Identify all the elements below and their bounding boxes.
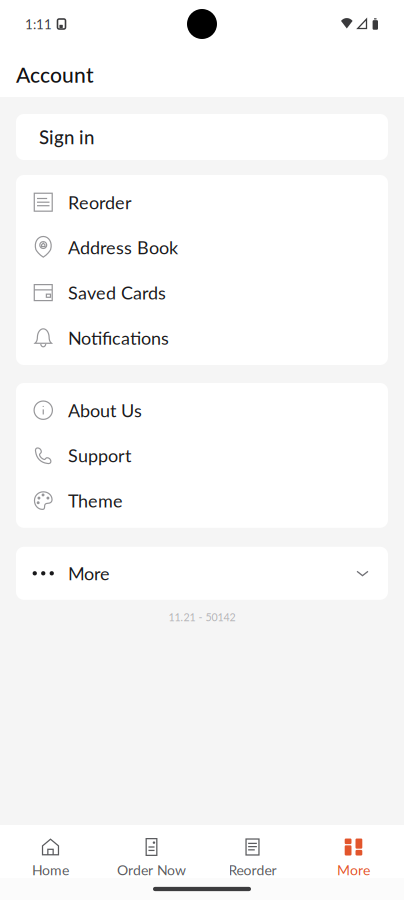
button[interactable]: Home	[0, 825, 101, 878]
staticText: Notifications	[68, 327, 169, 349]
button[interactable]: Reorder	[202, 825, 303, 878]
button[interactable]: More	[303, 825, 404, 878]
staticText: Account	[16, 62, 94, 87]
staticText: Reorder	[68, 191, 132, 213]
staticText: More	[337, 861, 370, 878]
staticText: Saved Cards	[68, 282, 166, 303]
staticText: Theme	[68, 490, 123, 511]
button[interactable]: Order Now	[101, 825, 202, 878]
staticText: 1:11	[25, 16, 52, 32]
button[interactable]: Notifications	[16, 315, 388, 360]
button[interactable]: Theme	[16, 478, 388, 523]
staticText: Address Book	[68, 237, 178, 258]
button[interactable]: Support	[16, 433, 388, 478]
staticText: Reorder	[228, 861, 276, 878]
button[interactable]: Reorder	[16, 180, 388, 225]
button[interactable]: Saved Cards	[16, 270, 388, 315]
staticText: About Us	[68, 399, 142, 421]
button[interactable]: About Us	[16, 388, 388, 433]
staticText: More	[68, 562, 110, 584]
staticText: Order Now	[117, 861, 186, 878]
staticText: Sign in	[39, 126, 94, 148]
button[interactable]: Address Book	[16, 225, 388, 270]
button[interactable]: Sign in	[16, 114, 388, 160]
button[interactable]: More	[16, 547, 388, 600]
staticText: Home	[32, 861, 69, 878]
staticText: Support	[68, 445, 131, 466]
staticText: 11.21 - 50142	[168, 611, 235, 624]
